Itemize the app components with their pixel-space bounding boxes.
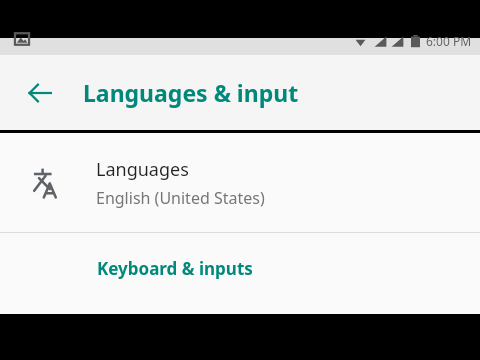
staticText: Languages & input	[83, 77, 299, 108]
staticText: Languages	[96, 157, 189, 182]
staticText: Keyboard & inputs	[97, 257, 253, 280]
button[interactable]: Languages	[0, 133, 480, 232]
staticText: 6:00 PM	[426, 33, 472, 49]
staticText: English (United States)	[96, 187, 265, 209]
button[interactable]: Back	[16, 69, 64, 117]
button[interactable]: Keyboard & inputs	[0, 233, 480, 304]
